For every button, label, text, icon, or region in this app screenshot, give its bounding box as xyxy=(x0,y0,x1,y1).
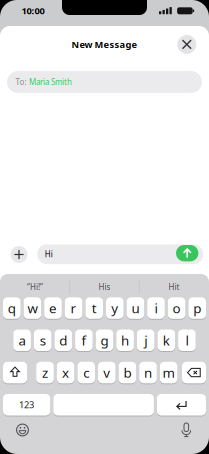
button[interactable]: m xyxy=(160,362,177,383)
staticText: p xyxy=(193,299,201,317)
button[interactable]: b xyxy=(119,362,136,383)
button[interactable] xyxy=(179,422,193,438)
staticText: 10:00 xyxy=(21,4,44,17)
staticText: Hit xyxy=(168,282,179,292)
button[interactable]: f xyxy=(75,329,93,351)
button[interactable]: r xyxy=(65,297,82,319)
button[interactable]: u xyxy=(127,297,144,319)
button[interactable]: “Hi!” xyxy=(2,278,68,296)
staticText: f xyxy=(81,331,86,349)
button[interactable] xyxy=(53,394,154,415)
staticText: Hi xyxy=(45,249,53,259)
staticText: a xyxy=(19,331,26,349)
button[interactable]: w xyxy=(24,297,41,319)
button[interactable]: g xyxy=(96,329,113,351)
staticText: n xyxy=(144,364,152,381)
staticText: e xyxy=(49,299,57,317)
staticText: Maria Smith xyxy=(29,77,72,87)
button[interactable]: a xyxy=(13,329,31,351)
button[interactable] xyxy=(3,362,27,383)
button[interactable]: Hit xyxy=(141,278,207,296)
staticText: s xyxy=(40,331,46,349)
button[interactable]: l xyxy=(178,329,196,351)
staticText: His xyxy=(98,282,110,292)
staticText: h xyxy=(121,331,129,349)
button[interactable]: n xyxy=(139,362,157,383)
staticText: i xyxy=(154,299,157,317)
button[interactable] xyxy=(157,394,206,415)
staticText: u xyxy=(131,299,139,317)
staticText: m xyxy=(163,364,175,381)
button[interactable]: j xyxy=(137,329,154,351)
staticText: q xyxy=(8,299,16,317)
button[interactable]: p xyxy=(188,297,206,319)
button[interactable] xyxy=(182,362,206,383)
button[interactable] xyxy=(15,423,29,437)
staticText: 123 xyxy=(19,399,34,411)
button[interactable]: To: xyxy=(7,71,202,93)
staticText: k xyxy=(163,331,170,349)
button[interactable]: v xyxy=(98,362,116,383)
staticText: z xyxy=(42,364,48,381)
button[interactable] xyxy=(177,35,196,54)
button[interactable]: q xyxy=(3,297,21,319)
staticText: “Hi!” xyxy=(27,282,43,292)
staticText: d xyxy=(59,331,67,349)
button[interactable]: t xyxy=(85,297,103,319)
staticText: To: xyxy=(15,77,26,87)
button[interactable]: k xyxy=(157,329,175,351)
staticText: b xyxy=(123,364,131,381)
button[interactable]: s xyxy=(34,329,51,351)
button[interactable]: h xyxy=(116,329,134,351)
staticText: x xyxy=(62,364,69,381)
staticText: New Message xyxy=(71,38,137,51)
staticText: v xyxy=(103,364,110,381)
staticText: o xyxy=(173,299,181,317)
staticText: y xyxy=(111,299,118,317)
button[interactable]: y xyxy=(106,297,124,319)
button[interactable]: c xyxy=(77,362,95,383)
button[interactable]: e xyxy=(44,297,62,319)
button[interactable]: i xyxy=(147,297,165,319)
button[interactable]: 123 xyxy=(3,394,50,415)
button[interactable]: His xyxy=(71,278,137,296)
staticText: c xyxy=(83,364,89,381)
staticText: l xyxy=(185,331,188,349)
button[interactable]: x xyxy=(57,362,74,383)
button[interactable]: o xyxy=(168,297,185,319)
staticText: t xyxy=(92,299,97,317)
staticText: r xyxy=(71,299,77,317)
button[interactable]: d xyxy=(54,329,72,351)
button[interactable] xyxy=(176,245,198,261)
staticText: j xyxy=(144,331,147,349)
button[interactable] xyxy=(10,246,27,263)
button[interactable]: z xyxy=(36,362,54,383)
staticText: w xyxy=(27,299,37,317)
staticText: g xyxy=(100,331,108,349)
